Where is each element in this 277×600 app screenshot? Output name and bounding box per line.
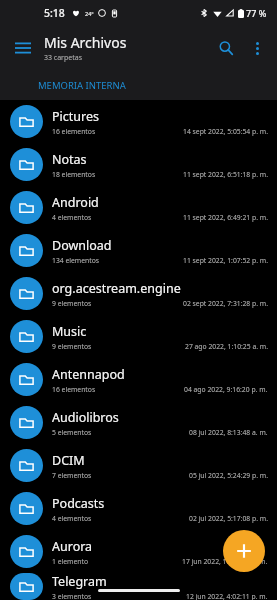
staticText: 11 sept 2022, 1:07:52 p. m. <box>183 256 268 265</box>
button[interactable]: Podcasts <box>0 487 277 530</box>
staticText: 5:18 <box>44 6 65 20</box>
button[interactable]: Buscar <box>209 31 243 65</box>
staticText: 27 ago 2022, 1:10:25 a. m. <box>185 342 268 351</box>
staticText: Mis Archivos <box>44 33 127 52</box>
staticText: 134 elementos <box>52 256 100 265</box>
staticText: 5 elementos <box>52 428 92 437</box>
staticText: 11 sept 2022, 6:49:21 p. m. <box>183 213 268 222</box>
button[interactable]: Music <box>0 315 277 358</box>
staticText: Notas <box>52 151 87 168</box>
button[interactable]: Aurora <box>0 530 277 573</box>
staticText: 18 elementos <box>52 170 96 179</box>
staticText: 04 ago 2022, 9:16:20 p. m. <box>184 385 268 394</box>
staticText: 24° <box>85 10 94 17</box>
staticText: Telegram <box>52 573 107 590</box>
staticText: Android <box>52 194 99 211</box>
staticText: 16 elementos <box>52 385 96 394</box>
staticText: 02 jul 2022, 5:17:08 p. m. <box>189 514 268 523</box>
button[interactable]: Notas <box>0 143 277 186</box>
staticText: Audiolibros <box>52 409 119 426</box>
staticText: Aurora <box>52 538 93 555</box>
button[interactable]: Más opciones <box>243 34 271 62</box>
staticText: 12 jun 2022, 4:02:11 p. m. <box>186 592 268 600</box>
button[interactable]: org.acestream.engine <box>0 272 277 315</box>
staticText: Music <box>52 323 87 340</box>
button[interactable]: Abrir menú de navegación <box>6 31 40 65</box>
staticText: DCIM <box>52 452 85 469</box>
button[interactable]: Pictures <box>0 100 277 143</box>
staticText: 11 sept 2022, 6:51:18 p. m. <box>183 170 268 179</box>
staticText: 08 jul 2022, 8:13:48 a. m. <box>189 428 268 437</box>
staticText: 9 elementos <box>52 299 92 308</box>
staticText: 77 % <box>246 7 267 19</box>
button[interactable]: Antennapod <box>0 358 277 401</box>
staticText: Antennapod <box>52 366 125 383</box>
button[interactable]: Audiolibros <box>0 401 277 444</box>
staticText: 4 elementos <box>52 514 92 523</box>
button[interactable]: Download <box>0 229 277 272</box>
staticText: 1 elemento <box>52 557 89 566</box>
staticText: 16 elementos <box>52 127 96 136</box>
staticText: Podcasts <box>52 495 105 512</box>
staticText: 33 carpetas <box>44 53 83 63</box>
staticText: Pictures <box>52 108 99 125</box>
staticText: 14 sept 2022, 5:05:54 p. m. <box>183 127 268 136</box>
staticText: org.acestream.engine <box>52 280 181 297</box>
staticText: 3 elementos <box>52 592 92 600</box>
staticText: 17 jun 2022, 10:47:19 p. m. <box>182 557 268 566</box>
button[interactable]: Crear <box>223 530 265 572</box>
staticText: 9 elementos <box>52 342 92 351</box>
button[interactable]: Android <box>0 186 277 229</box>
staticText: Download <box>52 237 112 254</box>
staticText: 05 jul 2022, 5:24:29 p. m. <box>189 471 268 480</box>
button[interactable]: DCIM <box>0 444 277 487</box>
staticText: 7 elementos <box>52 471 92 480</box>
button[interactable]: Telegram <box>0 573 277 600</box>
staticText: 4 elementos <box>52 213 92 222</box>
staticText: MEMORIA INTERNA <box>38 79 126 92</box>
staticText: 02 sept 2022, 7:31:28 p. m. <box>183 299 268 308</box>
